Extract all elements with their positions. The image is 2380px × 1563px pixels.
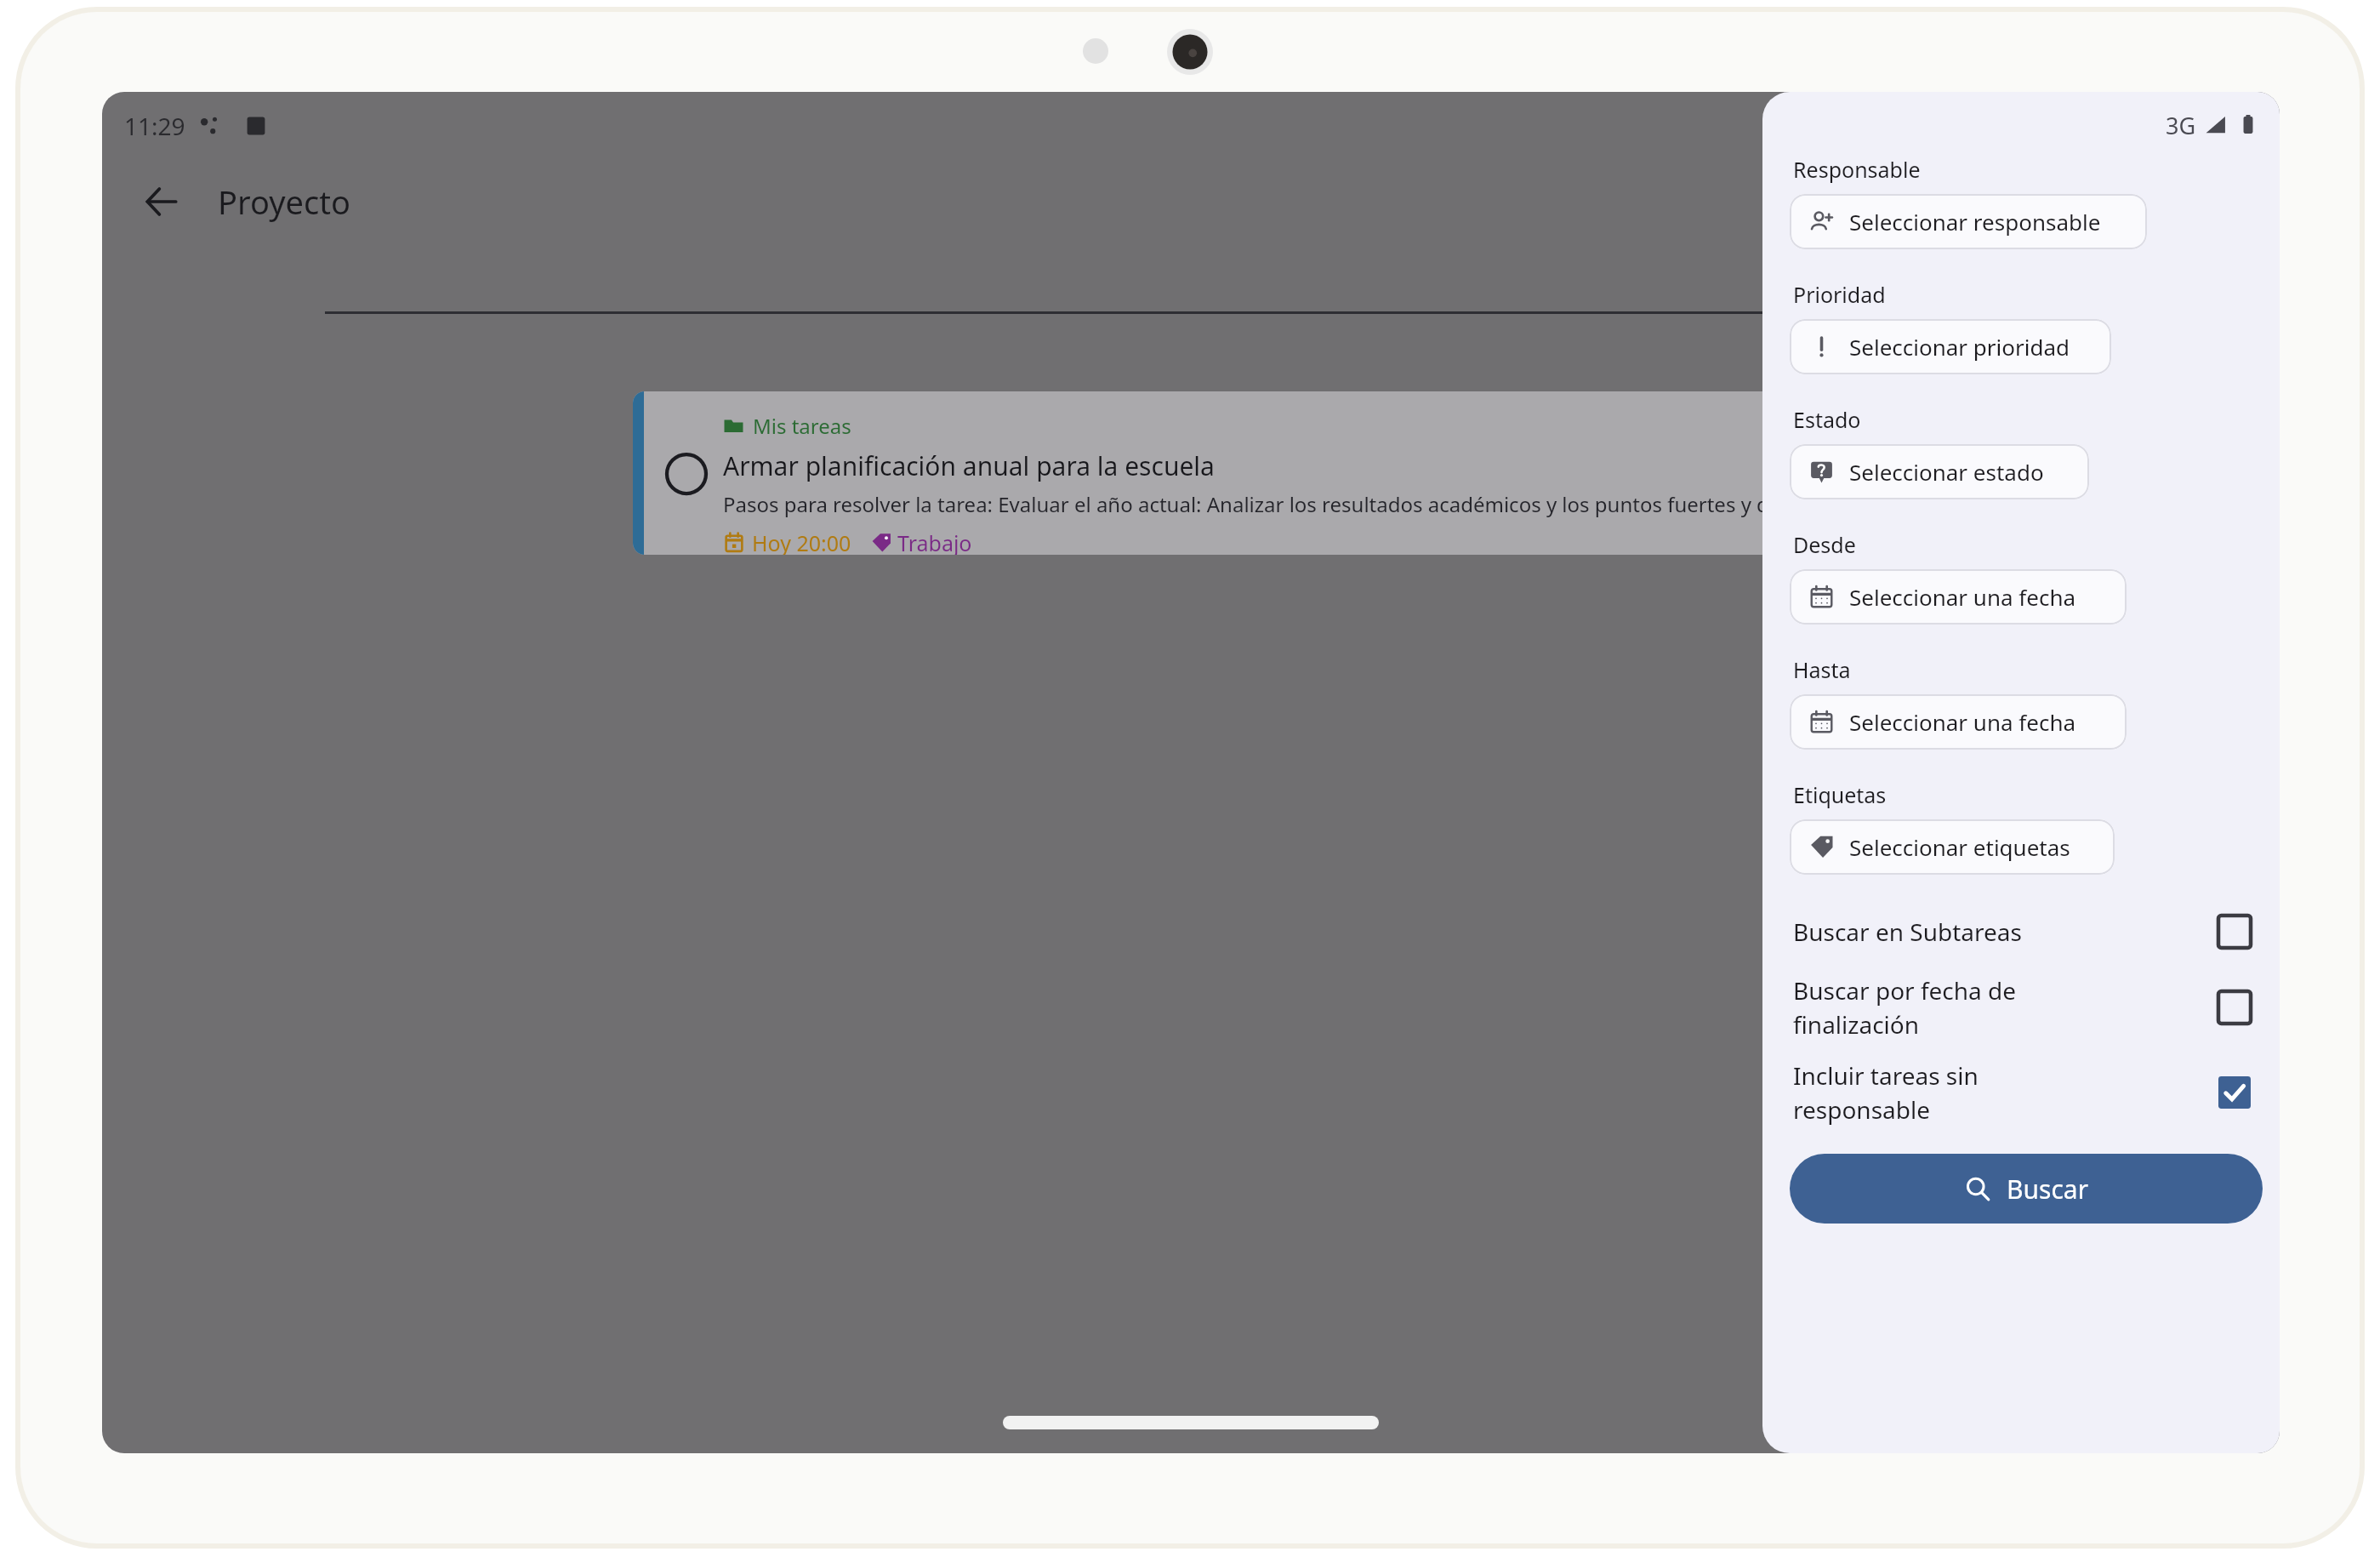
staticText: Incluir tareas sin responsable — [1793, 1059, 1979, 1127]
staticText: Pasos para resolver la tarea: Evaluar el… — [723, 490, 1863, 518]
staticText: Mis tareas — [753, 412, 851, 440]
staticText: Proyecto — [218, 180, 350, 224]
staticText: Seleccionar responsable — [1849, 207, 2101, 237]
staticText: Seleccionar estado — [1849, 457, 2044, 487]
button[interactable]: Seleccionar responsable — [1790, 194, 2147, 249]
staticText: Seleccionar una fecha — [1849, 707, 2076, 737]
staticText: Trabajo — [897, 528, 972, 555]
staticText: Seleccionar etiquetas — [1849, 832, 2070, 862]
button[interactable]: Incluir tareas sin responsable — [1790, 1050, 2263, 1135]
button[interactable]: Mis tareas — [633, 391, 1909, 555]
staticText: Seleccionar una fecha — [1849, 582, 2076, 612]
button[interactable]: Buscar en Subtareas — [1790, 898, 2263, 965]
staticText: Estado — [1793, 405, 1861, 434]
staticText: Prioridad — [1793, 280, 1886, 309]
staticText: Seleccionar prioridad — [1849, 332, 2070, 362]
staticText: Hoy 20:00 — [752, 528, 851, 555]
button[interactable]: Buscar — [1790, 1154, 2263, 1224]
staticText: Buscar en Subtareas — [1793, 916, 2022, 948]
staticText: Buscar por fecha de finalización — [1793, 974, 2017, 1041]
staticText: Etiquetas — [1793, 780, 1887, 809]
button[interactable]: Seleccionar prioridad — [1790, 319, 2111, 374]
staticText: 3G — [2166, 110, 2196, 141]
staticText: Armar planificación anual para la escuel… — [723, 448, 1215, 483]
button[interactable]: Seleccionar etiquetas — [1790, 819, 2115, 875]
staticText: 11:29 — [124, 110, 185, 142]
button[interactable]: Buscar por fecha de finalización — [1790, 965, 2263, 1050]
button[interactable]: Back — [126, 166, 197, 237]
staticText: Responsable — [1793, 155, 1921, 184]
staticText: Desde — [1793, 530, 1856, 559]
button[interactable]: Seleccionar estado — [1790, 444, 2089, 499]
button[interactable]: Seleccionar fecha desde — [1790, 569, 2127, 625]
staticText: Buscar — [2007, 1172, 2089, 1206]
staticText: Hasta — [1793, 655, 1851, 684]
button[interactable]: Seleccionar fecha hasta — [1790, 694, 2127, 750]
